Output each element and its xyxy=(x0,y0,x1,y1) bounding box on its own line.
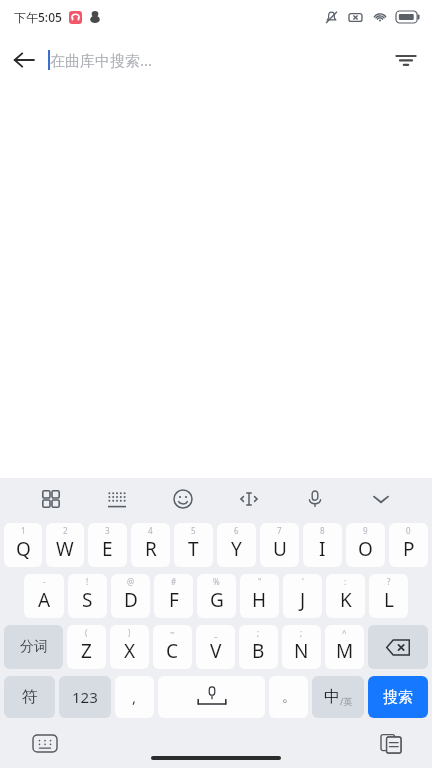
button[interactable]: " xyxy=(240,574,279,618)
button[interactable]: : xyxy=(326,574,365,618)
staticText: O xyxy=(358,536,373,562)
button[interactable]: ' xyxy=(283,574,322,618)
button[interactable]: # xyxy=(154,574,193,618)
staticText: : xyxy=(344,576,347,587)
button[interactable]: 中 xyxy=(312,676,364,718)
staticText: 3 xyxy=(105,525,110,536)
button[interactable]: Apps xyxy=(30,478,72,520)
staticText: 9 xyxy=(363,525,368,536)
staticText: M xyxy=(336,638,354,664)
staticText: 8 xyxy=(320,525,325,536)
button[interactable]: ^ xyxy=(325,625,364,669)
staticText: # xyxy=(171,576,177,587)
button[interactable]: 8 xyxy=(303,523,342,567)
button[interactable]: Backspace xyxy=(368,625,428,669)
button[interactable]: 3 xyxy=(88,523,127,567)
staticText: 2 xyxy=(63,525,68,536)
staticText: T xyxy=(188,536,199,562)
staticText: 中 xyxy=(324,687,340,707)
button[interactable]: 6 xyxy=(217,523,256,567)
staticText: /英 xyxy=(340,695,353,707)
button[interactable]: Back xyxy=(0,36,48,84)
button[interactable]: ? xyxy=(369,574,408,618)
staticText: R xyxy=(145,536,157,562)
staticText: ' xyxy=(302,576,304,587)
button[interactable]: ; xyxy=(282,625,321,669)
staticText: 。 xyxy=(282,688,296,706)
button[interactable]: ) xyxy=(110,625,149,669)
staticText: 0 xyxy=(406,525,411,536)
staticText: K xyxy=(340,587,352,613)
staticText: N xyxy=(294,638,309,664)
button[interactable]: 分词 xyxy=(4,625,63,669)
button[interactable]: % xyxy=(197,574,236,618)
button[interactable]: Clipboard xyxy=(376,728,406,758)
button[interactable]: @ xyxy=(111,574,150,618)
staticText: A xyxy=(38,587,51,613)
staticText: 下午5:05 xyxy=(14,9,62,25)
button[interactable]: 9 xyxy=(346,523,385,567)
button[interactable]: 搜索 xyxy=(368,676,428,718)
staticText: 搜索 xyxy=(383,688,413,707)
button[interactable]: 4 xyxy=(131,523,170,567)
button[interactable]: _ xyxy=(196,625,235,669)
staticText: Q xyxy=(16,536,31,562)
staticText: C xyxy=(166,638,179,664)
staticText: - xyxy=(43,576,46,587)
staticText: ! xyxy=(86,576,89,587)
staticText: H xyxy=(252,587,267,613)
button[interactable]: Switch keyboard xyxy=(30,728,60,758)
button[interactable]: 符 xyxy=(4,676,55,718)
staticText: P xyxy=(403,536,415,562)
staticText: Y xyxy=(231,536,242,562)
staticText: , xyxy=(132,687,137,707)
staticText: 在曲库中搜索... xyxy=(50,50,153,70)
staticText: 4 xyxy=(148,525,153,536)
button[interactable]: 5 xyxy=(174,523,213,567)
staticText: E xyxy=(102,536,113,562)
button[interactable]: 7 xyxy=(260,523,299,567)
button[interactable]: 1 xyxy=(4,523,42,567)
button[interactable]: 2 xyxy=(46,523,84,567)
staticText: 符 xyxy=(22,687,38,707)
staticText: ^ xyxy=(342,627,347,638)
staticText: _ xyxy=(214,627,218,638)
staticText: 6 xyxy=(234,525,239,536)
staticText: D xyxy=(124,587,138,613)
button[interactable]: Filter xyxy=(380,34,432,86)
staticText: G xyxy=(210,587,224,613)
button[interactable]: , xyxy=(115,676,154,718)
staticText: 5 xyxy=(191,525,196,536)
staticText: V xyxy=(210,638,222,664)
button[interactable]: Voice input xyxy=(294,478,336,520)
button[interactable]: 在曲库中搜索... xyxy=(48,34,380,86)
button[interactable]: Keyboard layout xyxy=(96,478,138,520)
button[interactable]: 。 xyxy=(269,676,308,718)
button[interactable]: ! xyxy=(68,574,107,618)
staticText: W xyxy=(56,536,74,562)
staticText: ; xyxy=(257,627,260,638)
staticText: ( xyxy=(85,627,88,638)
staticText: B xyxy=(252,638,265,664)
staticText: F xyxy=(169,587,179,613)
button[interactable]: Text edit xyxy=(228,478,270,520)
button[interactable]: ; xyxy=(239,625,278,669)
staticText: Z xyxy=(81,638,92,664)
button[interactable]: 123 xyxy=(59,676,111,718)
button[interactable]: 0 xyxy=(389,523,428,567)
staticText: L xyxy=(384,587,394,613)
staticText: J xyxy=(300,587,306,613)
staticText: ? xyxy=(387,576,391,587)
button[interactable]: - xyxy=(24,574,64,618)
staticText: S xyxy=(82,587,93,613)
staticText: 分词 xyxy=(20,638,48,656)
staticText: 123 xyxy=(72,687,98,707)
button[interactable]: ~ xyxy=(153,625,192,669)
staticText: ~ xyxy=(170,627,175,638)
staticText: " xyxy=(258,576,262,587)
button[interactable]: ( xyxy=(67,625,106,669)
staticText: % xyxy=(213,576,220,587)
button[interactable]: Space xyxy=(158,676,265,718)
button[interactable]: Emoji xyxy=(162,478,204,520)
button[interactable]: Hide keyboard xyxy=(360,478,402,520)
